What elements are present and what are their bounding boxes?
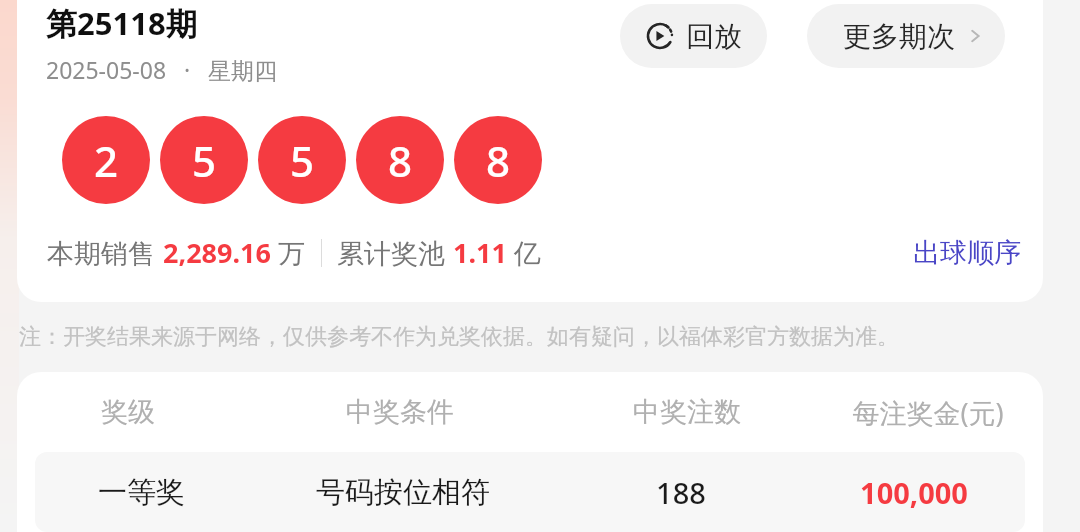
staticText: 2025-05-08 · 星期四 — [46, 54, 278, 85]
staticText: 奖级 — [101, 395, 155, 429]
staticText: 累计奖池 — [337, 234, 453, 271]
staticText: 中奖条件 — [346, 395, 454, 429]
staticText: 5 — [290, 132, 315, 189]
staticText: 亿 — [507, 234, 542, 271]
staticText: 更多期次 — [843, 19, 955, 54]
staticText: 出球顺序 — [913, 236, 1021, 270]
staticText: 一等奖 — [98, 474, 185, 511]
staticText: 100,000 — [860, 473, 968, 512]
staticText: 188 — [656, 473, 706, 512]
button[interactable]: 更多期次 — [807, 4, 1005, 68]
staticText: 1.11 — [453, 234, 507, 271]
button[interactable]: 出球顺序 — [913, 236, 1021, 270]
staticText: 回放 — [686, 19, 742, 54]
staticText: 注：开奖结果来源于网络，仅供参考不作为兑奖依据。如有疑问，以福体彩官方数据为准。 — [19, 323, 899, 351]
staticText: 本期销售 — [47, 234, 163, 271]
staticText: 中奖注数 — [633, 395, 741, 429]
staticText: 第25118期 — [46, 2, 197, 44]
staticText: 2,289.16 — [163, 234, 271, 271]
staticText: 号码按位相符 — [316, 474, 490, 511]
other: Replay — [645, 21, 675, 51]
button[interactable]: Replay — [620, 4, 767, 68]
button[interactable]: 一等奖 — [35, 452, 1025, 532]
staticText: 5 — [192, 132, 217, 189]
staticText: 每注奖金(元) — [852, 394, 1004, 431]
staticText: 万 — [271, 234, 306, 271]
staticText: 2 — [94, 132, 119, 189]
staticText: 8 — [486, 132, 511, 189]
staticText: 8 — [388, 132, 413, 189]
